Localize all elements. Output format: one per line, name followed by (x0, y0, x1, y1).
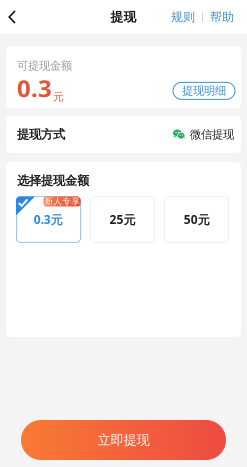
button[interactable]: 微信提现 (173, 127, 234, 142)
staticText: 立即提现 (97, 432, 149, 448)
staticText: 帮助 (210, 9, 234, 24)
staticText: 选择提现金额 (17, 173, 89, 188)
staticText: 0.3 (17, 72, 52, 104)
staticText: 50元 (184, 211, 210, 228)
button[interactable]: 25元 (90, 196, 155, 242)
button[interactable]: 提现明细 (173, 82, 235, 99)
button[interactable]: 帮助 (210, 9, 234, 24)
staticText: 0.3元 (34, 211, 63, 228)
button[interactable]: 0.3元 (16, 196, 81, 242)
staticText: 提现 (110, 9, 136, 25)
button[interactable]: 规则 (171, 9, 195, 24)
staticText: 25元 (109, 211, 135, 228)
staticText: 提现明细 (182, 84, 226, 98)
button[interactable]: 立即提现 (21, 420, 226, 460)
staticText: 规则 (171, 9, 195, 24)
staticText: 元 (53, 90, 64, 103)
button[interactable]: Back (0, 0, 24, 34)
button[interactable]: 50元 (164, 196, 229, 242)
staticText: 可提现金额 (17, 58, 72, 73)
staticText: 提现方式 (17, 127, 65, 142)
staticText: 微信提现 (190, 127, 234, 142)
staticText: 新人专享 (44, 196, 80, 207)
